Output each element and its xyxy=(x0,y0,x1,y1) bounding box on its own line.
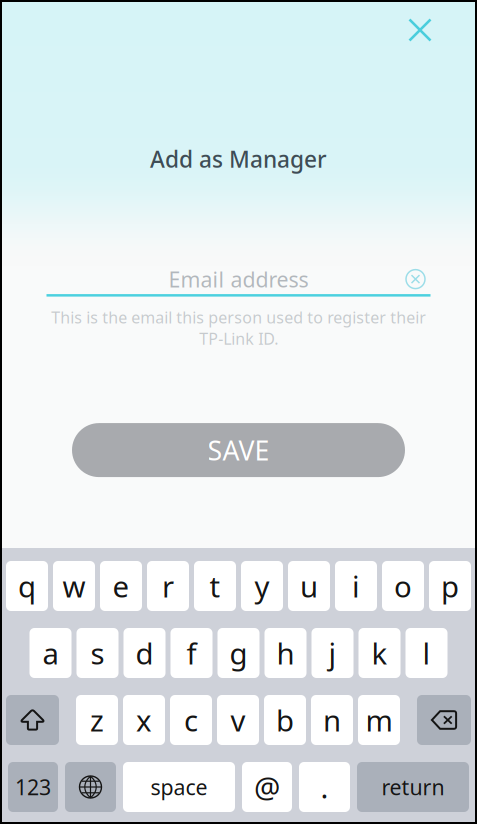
staticText: j xyxy=(328,633,336,672)
button[interactable]: Delete xyxy=(417,695,471,745)
button[interactable]: u xyxy=(288,561,330,611)
staticText: q xyxy=(18,566,36,605)
button[interactable]: c xyxy=(170,695,212,745)
button[interactable]: e xyxy=(100,561,142,611)
staticText: e xyxy=(112,566,129,605)
staticText: c xyxy=(184,700,198,739)
button[interactable]: o xyxy=(382,561,424,611)
staticText: z xyxy=(90,700,104,739)
staticText: i xyxy=(352,566,360,605)
button[interactable]: . xyxy=(299,762,350,812)
button[interactable]: y xyxy=(241,561,283,611)
staticText: t xyxy=(209,566,220,605)
staticText: space xyxy=(150,773,207,801)
button[interactable]: v xyxy=(217,695,259,745)
staticText: u xyxy=(300,566,318,605)
staticText: f xyxy=(186,633,196,672)
button[interactable]: d xyxy=(123,628,165,678)
button[interactable]: Shift xyxy=(6,695,59,745)
button[interactable]: r xyxy=(147,561,189,611)
button[interactable]: @ xyxy=(242,762,292,812)
button[interactable]: Close xyxy=(398,8,442,52)
staticText: b xyxy=(276,700,294,739)
button[interactable]: t xyxy=(194,561,236,611)
button[interactable]: g xyxy=(217,628,259,678)
staticText: p xyxy=(441,566,459,605)
button[interactable]: z xyxy=(76,695,118,745)
staticText: d xyxy=(135,633,153,672)
staticText: SAVE xyxy=(207,432,269,468)
staticText: r xyxy=(162,566,174,605)
button[interactable]: f xyxy=(170,628,212,678)
button[interactable]: return xyxy=(357,762,469,812)
button[interactable]: s xyxy=(76,628,118,678)
staticText: n xyxy=(323,700,341,739)
button[interactable]: l xyxy=(405,628,447,678)
staticText: o xyxy=(394,566,412,605)
staticText: h xyxy=(276,633,294,672)
button[interactable]: x xyxy=(123,695,165,745)
button[interactable]: i xyxy=(335,561,377,611)
button[interactable]: w xyxy=(53,561,95,611)
button[interactable]: q xyxy=(6,561,48,611)
staticText: k xyxy=(371,633,387,672)
button[interactable]: j xyxy=(311,628,353,678)
staticText: @ xyxy=(254,767,280,806)
button[interactable]: m xyxy=(358,695,400,745)
button[interactable]: h xyxy=(264,628,306,678)
staticText: return xyxy=(381,773,444,801)
staticText: x xyxy=(136,700,152,739)
staticText: Add as Manager xyxy=(150,144,327,174)
button[interactable]: a xyxy=(29,628,71,678)
staticText: This is the email this person used to re… xyxy=(51,307,426,349)
button[interactable]: Clear text xyxy=(400,264,430,294)
button[interactable]: SAVE xyxy=(72,423,405,477)
staticText: s xyxy=(90,633,104,672)
staticText: w xyxy=(62,566,85,605)
button[interactable]: space xyxy=(123,762,235,812)
staticText: m xyxy=(365,700,392,739)
button[interactable]: Next keyboard xyxy=(65,762,116,812)
button[interactable]: p xyxy=(429,561,471,611)
staticText: a xyxy=(42,633,58,672)
staticText: v xyxy=(230,700,245,739)
staticText: Email address xyxy=(168,265,308,293)
button[interactable]: k xyxy=(358,628,400,678)
staticText: y xyxy=(254,566,269,605)
button[interactable]: 123 xyxy=(8,762,58,812)
button[interactable]: n xyxy=(311,695,353,745)
staticText: . xyxy=(320,767,328,806)
button[interactable]: b xyxy=(264,695,306,745)
staticText: g xyxy=(229,633,247,672)
staticText: l xyxy=(422,633,430,672)
staticText: 123 xyxy=(15,773,51,801)
